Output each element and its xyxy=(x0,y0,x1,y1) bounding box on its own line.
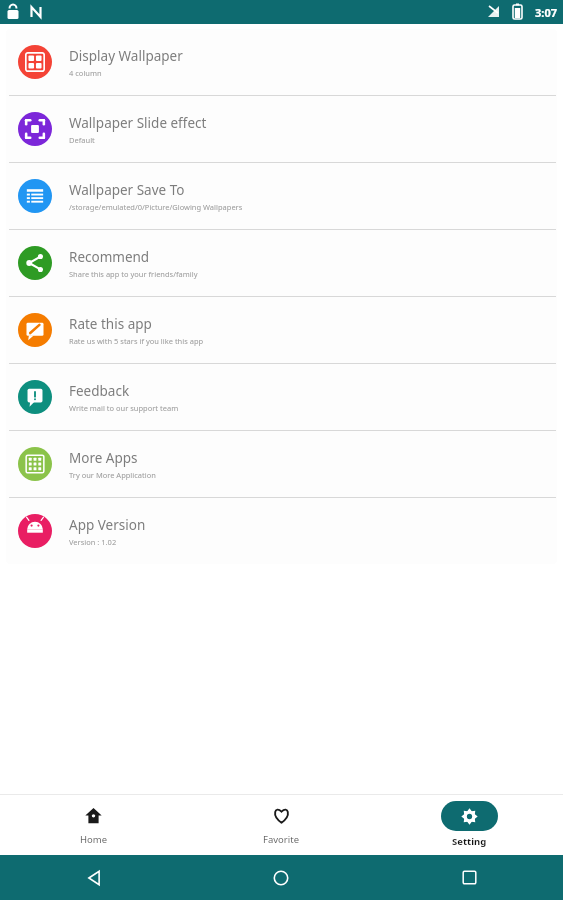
button[interactable]: Wallpaper Save To xyxy=(6,163,557,229)
button[interactable]: Back xyxy=(0,855,187,900)
button[interactable]: Rate this app xyxy=(6,297,557,363)
staticText: Version : 1.02 xyxy=(69,537,117,547)
staticText: More Apps xyxy=(69,449,138,467)
staticText: Display Wallpaper xyxy=(69,47,183,65)
button[interactable]: Feedback xyxy=(6,364,557,430)
staticText: 3:07 xyxy=(535,5,557,20)
staticText: Default xyxy=(69,135,95,145)
button[interactable]: Recent apps xyxy=(375,855,563,900)
staticText: Wallpaper Slide effect xyxy=(69,114,207,132)
button[interactable]: Display Wallpaper xyxy=(6,29,557,95)
staticText: Wallpaper Save To xyxy=(69,181,185,199)
button[interactable]: Home xyxy=(187,855,375,900)
button[interactable]: Wallpaper Slide effect xyxy=(6,96,557,162)
button[interactable]: Home xyxy=(0,794,187,855)
staticText: Home xyxy=(80,833,108,846)
staticText: Setting xyxy=(452,835,487,848)
staticText: Feedback xyxy=(69,382,130,400)
staticText: /storage/emulated/0/Picture/Glowing Wall… xyxy=(69,202,243,212)
staticText: App Version xyxy=(69,516,146,534)
staticText: Rate us with 5 stars if you like this ap… xyxy=(69,336,204,346)
staticText: Favorite xyxy=(263,833,299,846)
button[interactable]: App Version xyxy=(6,498,557,564)
staticText: Recommend xyxy=(69,248,150,266)
button[interactable]: Favorite xyxy=(187,794,375,855)
staticText: Write mail to our support team xyxy=(69,403,179,413)
staticText: Rate this app xyxy=(69,315,152,333)
button[interactable]: More Apps xyxy=(6,431,557,497)
button[interactable]: Setting xyxy=(375,794,563,855)
staticText: 4 column xyxy=(69,68,102,78)
staticText: Share this app to your friends/family xyxy=(69,269,198,279)
button[interactable]: Recommend xyxy=(6,230,557,296)
staticText: Try our More Application xyxy=(69,470,156,480)
